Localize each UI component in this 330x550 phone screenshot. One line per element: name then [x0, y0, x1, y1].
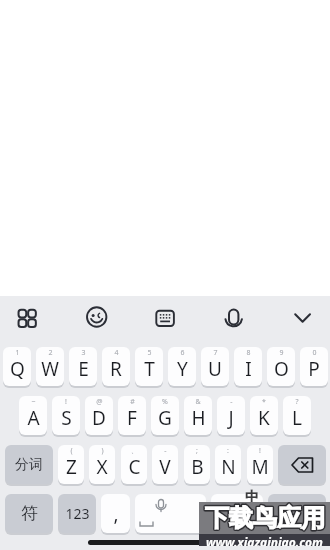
button[interactable]: [198, 296, 264, 344]
button[interactable]: ~: [19, 396, 47, 435]
staticText: -: [164, 446, 167, 456]
staticText: G: [158, 405, 172, 431]
staticText: Z: [66, 454, 77, 480]
staticText: D: [92, 405, 106, 431]
staticText: -: [230, 397, 233, 407]
staticText: ;: [196, 446, 198, 456]
button[interactable]: 1: [3, 347, 31, 386]
staticText: %: [162, 397, 168, 407]
staticText: O: [274, 356, 289, 382]
staticText: Q: [10, 356, 25, 382]
staticText: J: [228, 405, 234, 431]
button[interactable]: 4: [102, 347, 130, 386]
staticText: L: [292, 405, 302, 431]
button[interactable]: ?: [283, 396, 311, 435]
staticText: 下载鸟应用: [205, 503, 325, 533]
button[interactable]: ): [89, 445, 115, 484]
button[interactable]: -: [152, 445, 178, 484]
staticText: @: [96, 397, 103, 407]
button[interactable]: 2: [36, 347, 64, 386]
staticText: B: [191, 454, 204, 480]
staticText: 4: [114, 348, 119, 358]
staticText: W: [41, 356, 59, 382]
button[interactable]: [278, 445, 326, 484]
button[interactable]: 3: [69, 347, 97, 386]
staticText: 中: [245, 488, 258, 504]
staticText: Y: [177, 356, 188, 382]
staticText: &: [195, 397, 201, 407]
staticText: 123: [65, 504, 90, 523]
staticText: 分词: [15, 456, 43, 474]
button[interactable]: [132, 296, 198, 344]
staticText: 3: [81, 348, 86, 358]
staticText: !: [259, 446, 261, 456]
button[interactable]: -: [217, 396, 245, 435]
button[interactable]: (: [58, 445, 84, 484]
staticText: 2: [48, 348, 53, 358]
button[interactable]: 0: [300, 347, 328, 386]
button[interactable]: [66, 296, 132, 344]
button[interactable]: @: [85, 396, 113, 435]
staticText: www.xiazainiao.com: [206, 534, 323, 546]
staticText: #: [130, 397, 135, 407]
button[interactable]: ,: [101, 494, 130, 533]
staticText: 符: [21, 503, 38, 524]
staticText: U: [208, 356, 222, 382]
staticText: ?: [295, 397, 299, 407]
staticText: 1: [15, 348, 20, 358]
staticText: 换行: [284, 506, 310, 522]
button[interactable]: &: [184, 396, 212, 435]
staticText: 、: [131, 446, 138, 455]
staticText: R: [110, 356, 122, 382]
staticText: V: [159, 454, 171, 480]
staticText: I: [245, 356, 252, 382]
button[interactable]: 5: [135, 347, 163, 386]
staticText: 8: [246, 348, 251, 358]
button[interactable]: *: [250, 396, 278, 435]
button[interactable]: 8: [234, 347, 262, 386]
staticText: 5: [147, 348, 152, 358]
staticText: :: [227, 446, 229, 456]
button[interactable]: [0, 296, 66, 344]
button[interactable]: 6: [168, 347, 196, 386]
button[interactable]: [135, 494, 206, 533]
staticText: ): [101, 446, 104, 456]
button[interactable]: 。: [211, 494, 263, 533]
staticText: *: [262, 397, 266, 407]
button[interactable]: #: [118, 396, 146, 435]
staticText: 9: [279, 348, 284, 358]
staticText: S: [61, 405, 72, 431]
button[interactable]: :: [215, 445, 241, 484]
staticText: 0: [312, 348, 317, 358]
staticText: M: [251, 454, 269, 480]
staticText: E: [78, 356, 89, 382]
staticText: F: [127, 405, 137, 431]
button[interactable]: 123: [58, 494, 96, 533]
staticText: 。: [229, 504, 245, 524]
button[interactable]: !: [247, 445, 273, 484]
staticText: N: [221, 454, 236, 480]
staticText: T: [144, 356, 155, 382]
staticText: X: [96, 454, 108, 480]
staticText: K: [258, 405, 270, 431]
button[interactable]: 符: [5, 494, 53, 533]
staticText: C: [128, 454, 141, 480]
button[interactable]: [264, 296, 330, 344]
staticText: A: [27, 405, 40, 431]
button[interactable]: 分词: [5, 445, 53, 484]
staticText: 下载鸟应用: [205, 503, 325, 533]
button[interactable]: !: [52, 396, 80, 435]
staticText: 7: [213, 348, 218, 358]
staticText: P: [308, 356, 320, 382]
button[interactable]: ;: [184, 445, 210, 484]
button[interactable]: 9: [267, 347, 295, 386]
button[interactable]: 7: [201, 347, 229, 386]
button[interactable]: 换行: [268, 494, 326, 533]
staticText: 6: [180, 348, 185, 358]
staticText: (: [70, 446, 73, 456]
staticText: ,: [113, 501, 119, 527]
button[interactable]: 、: [121, 445, 147, 484]
button[interactable]: %: [151, 396, 179, 435]
staticText: ~: [31, 397, 36, 407]
staticText: H: [191, 405, 206, 431]
